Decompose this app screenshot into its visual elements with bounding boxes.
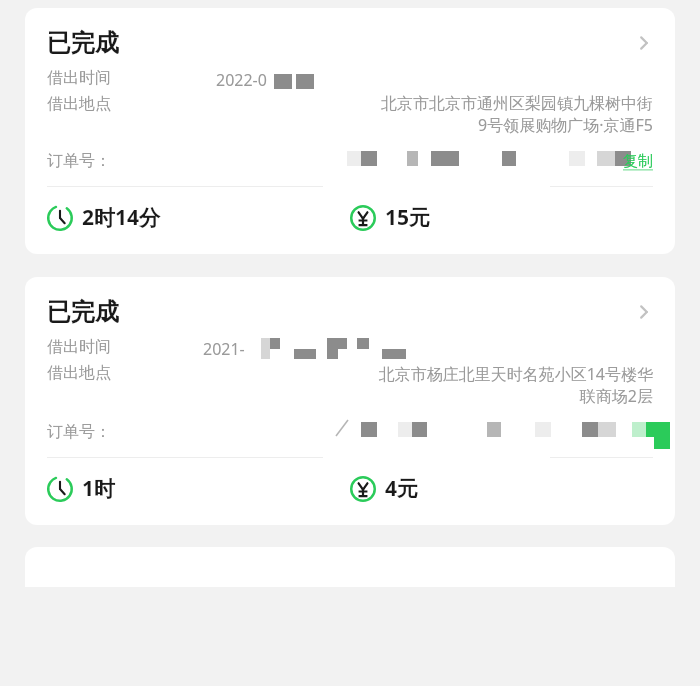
staticText: 复制 xyxy=(623,152,653,171)
staticText: 4元 xyxy=(385,474,419,503)
staticText: 借出时间 xyxy=(47,68,111,88)
button[interactable]: 查看详情 xyxy=(631,299,657,325)
staticText: 已完成 xyxy=(47,297,119,327)
staticText: 借出时间 xyxy=(47,337,111,357)
button[interactable]: 查看详情 xyxy=(631,30,657,56)
staticText: 订单号： xyxy=(47,422,111,442)
staticText: 联商场2层 xyxy=(579,385,653,407)
staticText: 2022-0 xyxy=(216,69,267,91)
staticText: 2时14分 xyxy=(82,203,161,232)
staticText: 已完成 xyxy=(47,28,119,58)
staticText: 北京市杨庄北里天时名苑小区14号楼华 xyxy=(378,363,653,385)
staticText: 1时 xyxy=(82,474,116,503)
staticText: 15元 xyxy=(385,203,431,232)
staticText: 2021- xyxy=(203,338,245,360)
button[interactable]: 已完成 xyxy=(25,277,675,525)
staticText: 9号领展购物广场·京通F5 xyxy=(478,114,653,136)
staticText: 订单号： xyxy=(47,151,111,171)
staticText: 借出地点 xyxy=(47,363,111,383)
staticText: 北京市北京市通州区梨园镇九棵树中街 xyxy=(381,94,653,114)
staticText: 借出地点 xyxy=(47,94,111,114)
button[interactable]: 已完成 xyxy=(25,8,675,254)
button[interactable]: 复制 xyxy=(623,152,653,171)
